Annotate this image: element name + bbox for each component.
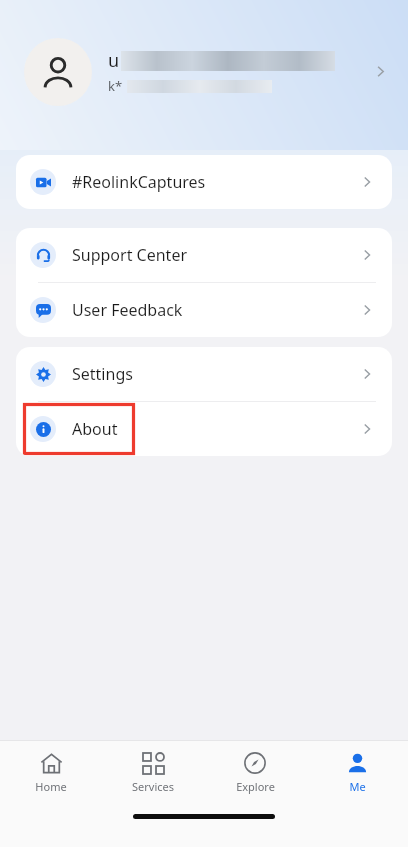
staticText: About	[72, 418, 118, 440]
button[interactable]: Support Center	[16, 228, 392, 282]
staticText: u	[108, 48, 120, 73]
button[interactable]: Settings	[16, 347, 392, 401]
staticText: Support Center	[72, 244, 188, 266]
staticText: #ReolinkCaptures	[72, 171, 206, 193]
button[interactable]: Explore	[204, 741, 306, 803]
staticText: Home	[35, 779, 67, 794]
button[interactable]: #ReolinkCaptures	[16, 155, 392, 209]
staticText: Services	[132, 779, 174, 794]
staticText: User Feedback	[72, 299, 183, 321]
button[interactable]: u	[0, 0, 408, 143]
staticText: Settings	[72, 363, 133, 385]
button[interactable]: Services	[102, 741, 204, 803]
button[interactable]: About	[16, 402, 392, 456]
button[interactable]: Me	[306, 741, 408, 803]
staticText: Me	[349, 779, 366, 794]
staticText: Explore	[236, 779, 275, 794]
button[interactable]: User Feedback	[16, 283, 392, 337]
staticText: k*	[108, 77, 123, 95]
button[interactable]: Home	[0, 741, 102, 803]
